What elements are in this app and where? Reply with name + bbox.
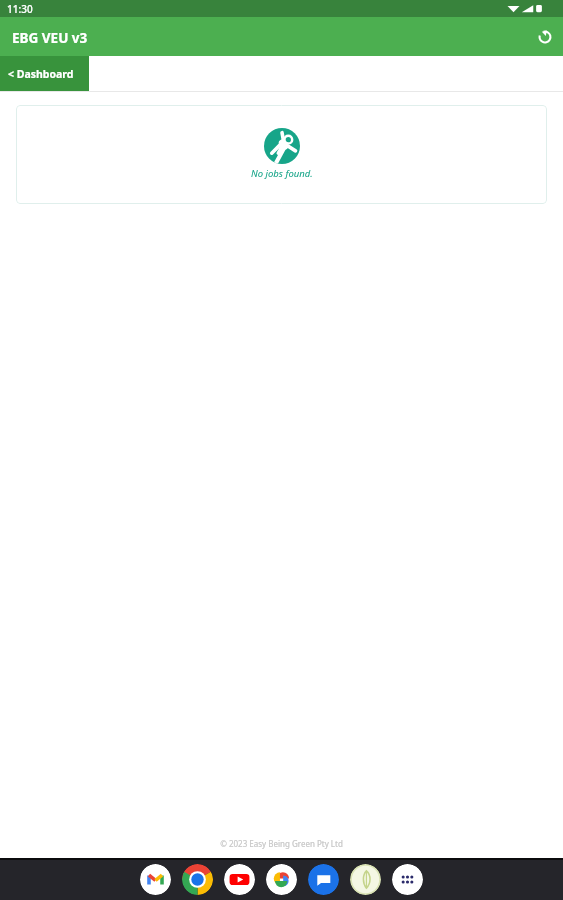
- staticText: EBG VEU v3: [12, 29, 88, 47]
- button[interactable]: Refresh: [533, 25, 557, 49]
- button[interactable]: < Dashboard: [0, 56, 89, 91]
- button[interactable]: Energy app: [350, 864, 381, 895]
- button[interactable]: Gmail: [140, 864, 171, 895]
- button[interactable]: Google Photos: [266, 864, 297, 895]
- button[interactable]: All apps: [392, 864, 423, 895]
- staticText: 11:30: [7, 2, 33, 16]
- button[interactable]: YouTube: [224, 864, 255, 895]
- staticText: No jobs found.: [251, 167, 313, 180]
- button[interactable]: Chrome: [182, 864, 213, 895]
- staticText: < Dashboard: [8, 67, 74, 81]
- button[interactable]: Messages: [308, 864, 339, 895]
- staticText: © 2023 Easy Being Green Pty Ltd: [0, 838, 563, 849]
